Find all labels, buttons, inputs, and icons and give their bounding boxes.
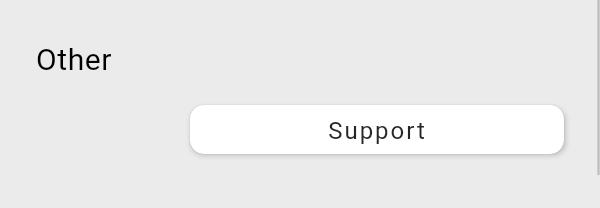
button[interactable]: Support [190,105,564,154]
staticText: Support [328,117,427,145]
staticText: Other [36,42,113,77]
